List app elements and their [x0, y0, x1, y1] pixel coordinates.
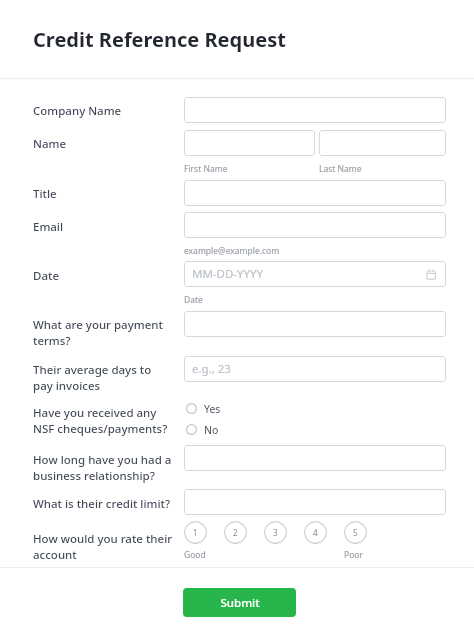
button[interactable]: MM-DD-YYYY	[184, 261, 446, 287]
button[interactable]	[184, 97, 446, 123]
button[interactable]: 3	[264, 521, 287, 544]
button[interactable]	[184, 445, 446, 471]
button[interactable]: Submit	[183, 588, 296, 617]
staticText: No	[204, 423, 219, 437]
staticText: 1	[193, 527, 198, 538]
staticText: What is their credit limit?	[33, 496, 171, 512]
button[interactable]	[184, 489, 446, 515]
button[interactable]	[184, 311, 446, 337]
staticText: Submit	[220, 595, 260, 611]
staticText: Name	[33, 136, 66, 152]
staticText: Date	[33, 268, 59, 284]
other: Open date picker	[426, 269, 437, 280]
button[interactable]: No	[186, 421, 219, 438]
staticText: How long have you had a business relatio…	[33, 452, 173, 483]
staticText: Have you received any NSF cheques/paymen…	[33, 405, 173, 436]
staticText: Company Name	[33, 103, 122, 119]
staticText: First Name	[184, 163, 228, 175]
button[interactable]	[184, 130, 315, 156]
button[interactable]	[184, 212, 446, 238]
staticText: Last Name	[319, 163, 362, 175]
staticText: e.g., 23	[192, 361, 231, 377]
staticText: Their average days to pay invoices	[33, 362, 173, 393]
button[interactable]: Yes	[186, 400, 221, 417]
button[interactable]: 4	[304, 521, 327, 544]
staticText: MM-DD-YYYY	[192, 266, 264, 282]
button[interactable]: 2	[224, 521, 247, 544]
staticText: Title	[33, 186, 57, 202]
button[interactable]: 5	[344, 521, 367, 544]
staticText: 2	[233, 527, 238, 538]
button[interactable]	[319, 130, 446, 156]
button[interactable]: 1	[184, 521, 207, 544]
staticText: What are your payment terms?	[33, 317, 173, 348]
staticText: 5	[353, 527, 358, 538]
button[interactable]	[184, 180, 446, 206]
staticText: Credit Reference Request	[33, 26, 286, 53]
staticText: How would you rate their account	[33, 531, 173, 562]
staticText: Good	[184, 549, 206, 561]
button[interactable]: e.g., 23	[184, 356, 446, 382]
staticText: 4	[313, 527, 318, 538]
staticText: Email	[33, 219, 64, 235]
staticText: Yes	[204, 402, 221, 416]
staticText: example@example.com	[184, 245, 280, 257]
staticText: Date	[184, 294, 203, 306]
staticText: Poor	[344, 549, 363, 561]
staticText: 3	[273, 527, 278, 538]
